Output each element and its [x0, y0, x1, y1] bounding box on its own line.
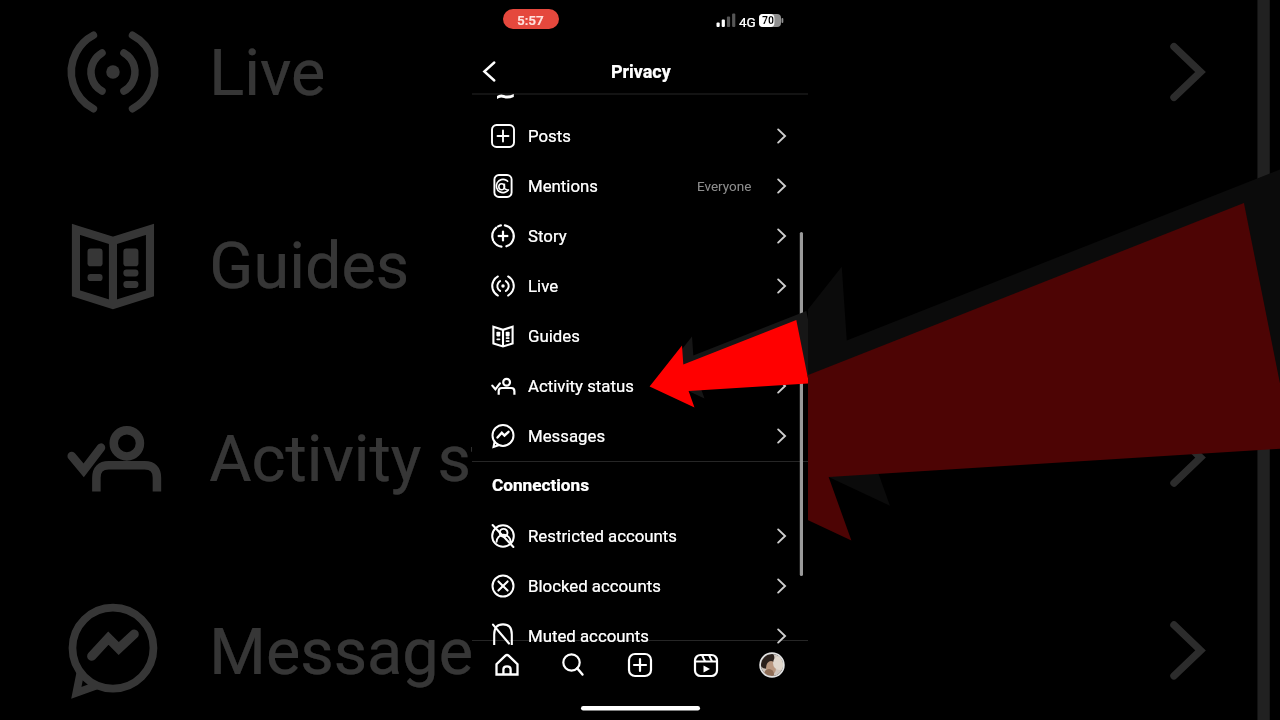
button[interactable]: Mentions, Everyone — [472, 161, 808, 211]
staticText: Story — [528, 226, 567, 246]
staticText: Guides — [528, 326, 580, 346]
button[interactable]: Back — [476, 50, 516, 94]
button[interactable]: Messages — [472, 411, 808, 461]
staticText: Restricted accounts — [528, 526, 678, 546]
staticText: 4G — [739, 14, 756, 30]
button[interactable]: Guides — [472, 311, 808, 361]
button[interactable]: Muted accounts — [472, 611, 808, 640]
button[interactable]: Live — [472, 261, 808, 311]
staticText: Blocked accounts — [528, 576, 661, 596]
button[interactable]: Restricted accounts — [472, 511, 808, 561]
staticText: 5:57 — [517, 12, 544, 28]
button[interactable]: Story — [472, 211, 808, 261]
staticText: Muted accounts — [528, 626, 649, 646]
staticText: Messages — [528, 426, 606, 446]
staticText: Posts — [528, 126, 571, 146]
button[interactable]: Search — [551, 641, 595, 689]
staticText: Live — [528, 276, 559, 296]
staticText: Everyone — [697, 178, 752, 194]
button[interactable]: Create new post — [618, 641, 662, 689]
button[interactable]: Activity status — [472, 361, 808, 411]
button[interactable]: Posts — [472, 111, 808, 161]
staticText: Activity status — [528, 376, 634, 396]
button[interactable]: Blocked accounts — [472, 561, 808, 611]
staticText: Guides — [209, 226, 410, 303]
staticText: Privacy — [611, 61, 671, 82]
button[interactable]: Home — [485, 641, 529, 689]
button[interactable]: Profile — [750, 641, 794, 689]
staticText: Messages — [209, 612, 510, 689]
staticText: Mentions — [528, 176, 598, 196]
staticText: 70 — [762, 14, 775, 26]
button[interactable]: Reels — [684, 641, 728, 689]
staticText: Live — [209, 33, 329, 111]
staticText: Activity status — [209, 419, 618, 496]
staticText: Connections — [492, 475, 590, 495]
